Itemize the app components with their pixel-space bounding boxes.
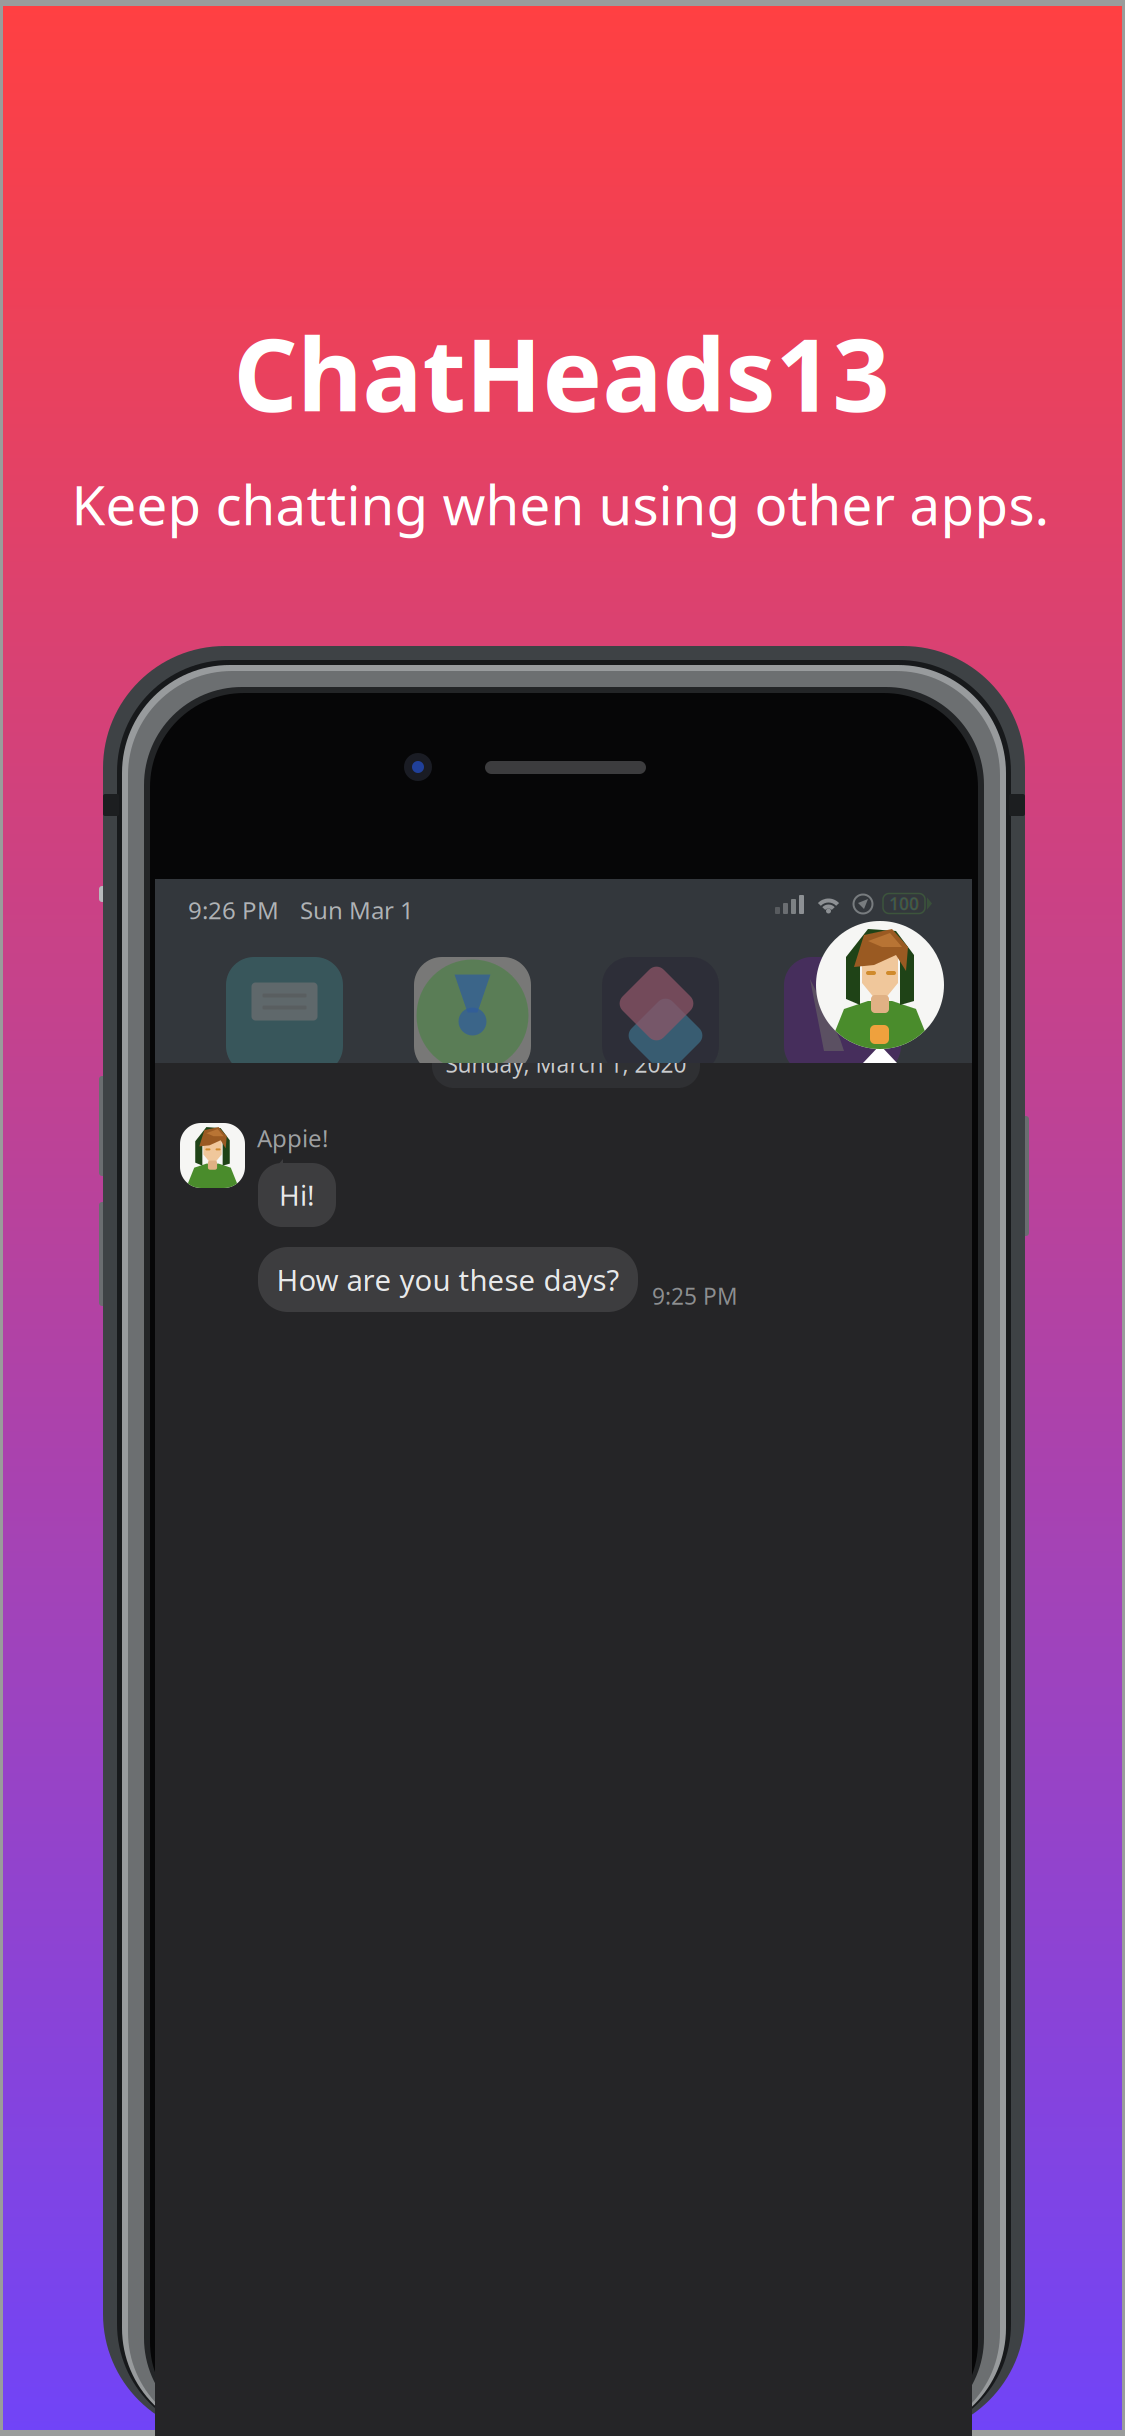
- staticText: 9:26 PM: [188, 894, 279, 926]
- staticText: 9:25 PM: [652, 1281, 738, 1311]
- staticText: Hi!: [279, 1176, 315, 1214]
- staticText: 100: [889, 892, 919, 915]
- staticText: Keep chatting when using other apps.: [71, 468, 1049, 540]
- staticText: ChatHeads13: [233, 307, 889, 439]
- staticText: How are you these days?: [276, 1260, 619, 1299]
- staticText: Appie!: [257, 1122, 328, 1154]
- button[interactable]: Open chat with Appie: [816, 921, 944, 1067]
- button[interactable]: Shortcuts: [602, 957, 719, 1074]
- staticText: Sunday, March 1, 2020: [445, 1049, 686, 1079]
- button[interactable]: Maps: [414, 957, 531, 1074]
- staticText: Sun Mar 1: [300, 894, 414, 926]
- button[interactable]: Notes: [226, 957, 343, 1074]
- button[interactable]: ChatHeads: [784, 957, 901, 1074]
